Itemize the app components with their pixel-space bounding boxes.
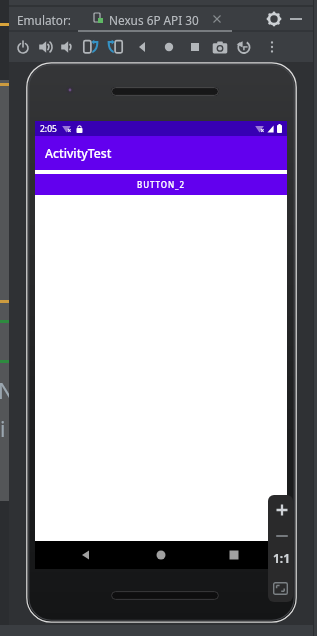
button[interactable]: Zoom out: [276, 530, 288, 542]
button[interactable]: Power: [15, 39, 31, 55]
button[interactable]: History: [235, 39, 251, 55]
button[interactable]: Rotate left: [83, 39, 99, 55]
button[interactable]: Overview: [187, 39, 203, 55]
button[interactable]: Recents: [227, 548, 241, 562]
button[interactable]: More: [264, 39, 280, 55]
button[interactable]: Home: [161, 39, 177, 55]
button[interactable]: Volume down: [60, 39, 76, 55]
button[interactable]: Back: [79, 548, 93, 562]
staticText: i: [0, 415, 6, 444]
staticText: Nexus 6P API 30: [109, 12, 199, 28]
button[interactable]: 1:1: [273, 550, 291, 566]
button[interactable]: Close tab: [212, 14, 222, 24]
staticText: 2:05: [40, 123, 57, 135]
button[interactable]: BUTTON_2: [35, 174, 287, 195]
button[interactable]: Volume up: [38, 39, 54, 55]
button[interactable]: Fit to screen: [273, 582, 288, 595]
button[interactable]: Home: [154, 548, 168, 562]
staticText: Emulator:: [17, 12, 71, 28]
button[interactable]: Screenshot: [212, 39, 228, 55]
button[interactable]: Back: [135, 39, 151, 55]
staticText: ActivityTest: [45, 145, 112, 162]
button[interactable]: Settings: [266, 11, 282, 27]
staticText: BUTTON_2: [137, 179, 185, 190]
staticText: N: [0, 377, 14, 406]
button[interactable]: Minimize: [288, 11, 304, 27]
button[interactable]: Zoom in: [276, 504, 288, 516]
button[interactable]: Rotate right: [107, 39, 123, 55]
